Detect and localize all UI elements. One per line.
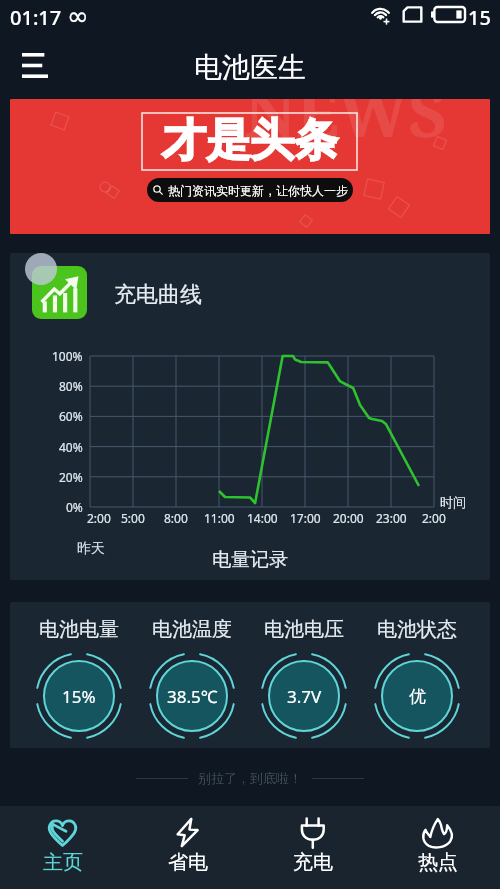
- staticText: 省电: [168, 850, 208, 875]
- button[interactable]: 充电: [250, 806, 375, 889]
- staticText: 别拉了，到底啦！: [198, 770, 302, 786]
- staticText: 20%: [59, 469, 83, 485]
- staticText: 5:00: [121, 510, 145, 526]
- button[interactable]: 热点: [375, 806, 500, 889]
- staticText: 2:00: [422, 510, 446, 526]
- staticText: 2:00: [87, 510, 111, 526]
- button[interactable]: 热门资讯实时更新，让你快人一步: [147, 178, 353, 202]
- staticText: 时间: [440, 494, 466, 510]
- staticText: 23:00: [376, 510, 407, 526]
- button[interactable]: 电池温度: [136, 612, 248, 740]
- staticText: 80%: [59, 378, 83, 394]
- staticText: 电池状态: [377, 617, 457, 642]
- staticText: 60%: [59, 408, 83, 424]
- staticText: 主页: [43, 850, 83, 875]
- staticText: NEWS: [244, 99, 447, 156]
- staticText: 充电曲线: [114, 281, 202, 309]
- staticText: 15: [468, 4, 491, 31]
- staticText: 8:00: [164, 510, 188, 526]
- staticText: 热点: [418, 850, 458, 875]
- button[interactable]: Menu: [6, 44, 60, 88]
- button[interactable]: 电池状态: [361, 612, 473, 740]
- staticText: 14:00: [247, 510, 278, 526]
- staticText: 100%: [52, 348, 83, 364]
- staticText: 电量记录: [212, 548, 288, 572]
- button[interactable]: 电池电量: [23, 612, 135, 740]
- staticText: 电池电量: [39, 617, 119, 642]
- staticText: 40%: [59, 439, 83, 455]
- staticText: 热门资讯实时更新，让你快人一步: [168, 183, 348, 198]
- staticText: 电池温度: [152, 617, 232, 642]
- staticText: 38.5℃: [167, 685, 218, 708]
- button[interactable]: NEWS: [10, 99, 490, 234]
- staticText: 才是头条: [162, 113, 338, 168]
- staticText: 11:00: [204, 510, 235, 526]
- button[interactable]: 主页: [0, 806, 125, 889]
- staticText: 0%: [66, 499, 83, 515]
- staticText: 昨天: [77, 540, 105, 558]
- staticText: ∞: [67, 1, 89, 31]
- staticText: 充电: [293, 850, 333, 875]
- staticText: 20:00: [333, 510, 364, 526]
- staticText: 电池电压: [264, 617, 344, 642]
- staticText: 电池医生: [194, 50, 306, 85]
- staticText: 优: [409, 686, 426, 707]
- button[interactable]: 省电: [125, 806, 250, 889]
- staticText: 17:00: [290, 510, 321, 526]
- staticText: 01:17: [10, 4, 62, 31]
- button[interactable]: 电池电压: [248, 612, 360, 740]
- staticText: 15%: [62, 685, 96, 708]
- staticText: 3.7V: [287, 685, 322, 708]
